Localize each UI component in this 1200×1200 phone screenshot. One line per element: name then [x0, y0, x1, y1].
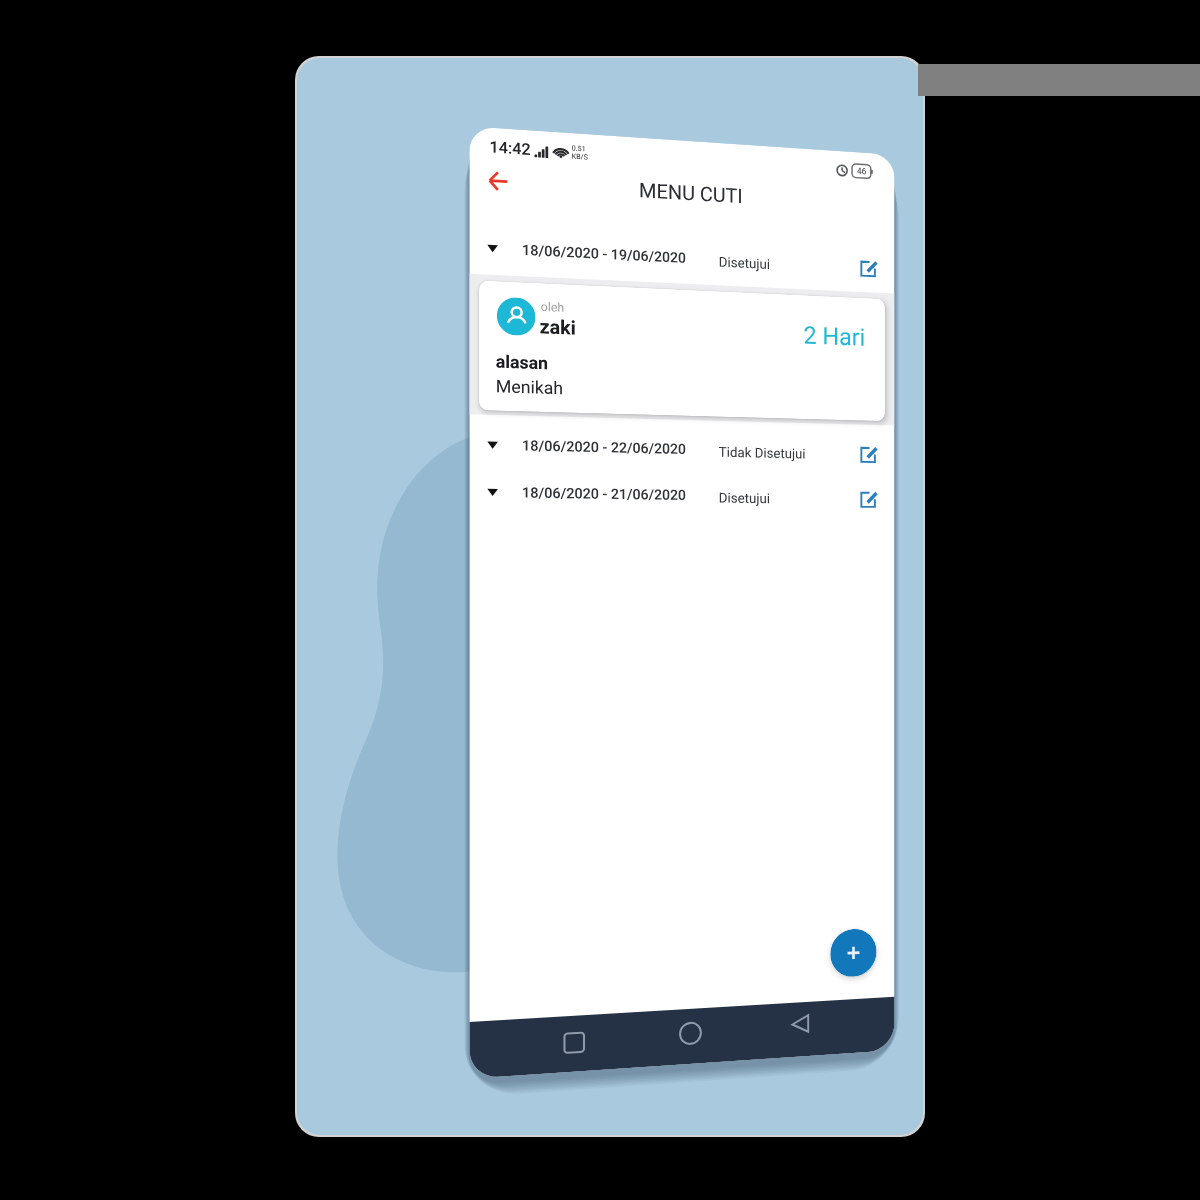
staticText: Disetujui — [719, 489, 770, 506]
button[interactable]: Edit — [857, 443, 879, 467]
button[interactable]: Add — [830, 928, 877, 978]
button[interactable]: 18/06/2020 - 21/06/2020 — [469, 471, 894, 521]
staticText: 2 Hari — [803, 321, 865, 352]
staticText: zaki — [540, 315, 577, 339]
staticText: oleh — [541, 300, 564, 315]
staticText: Disetujui — [719, 253, 770, 272]
button[interactable]: 18/06/2020 - 19/06/2020 — [469, 226, 894, 292]
button[interactable]: Edit — [857, 488, 879, 512]
button[interactable]: oleh — [479, 280, 885, 421]
staticText: KB/S — [572, 152, 588, 162]
button[interactable]: Back — [784, 1006, 817, 1042]
staticText: 18/06/2020 - 22/06/2020 — [522, 437, 686, 457]
staticText: 46 — [857, 166, 867, 177]
button[interactable]: Home — [673, 1015, 707, 1051]
button[interactable]: Edit — [857, 257, 879, 281]
staticText: alasan — [496, 351, 549, 373]
staticText: Tidak Disetujui — [719, 444, 806, 461]
staticText: 18/06/2020 - 21/06/2020 — [522, 484, 686, 503]
button[interactable]: 18/06/2020 - 22/06/2020 — [469, 423, 894, 477]
staticText: 0.51 — [572, 144, 586, 153]
staticText: Menikah — [496, 376, 563, 398]
staticText: 18/06/2020 - 19/06/2020 — [522, 241, 686, 266]
button[interactable]: Recents — [556, 1024, 591, 1061]
staticText: 14:42 — [489, 138, 531, 159]
staticText: MENU CUTI — [639, 178, 743, 207]
button[interactable]: Back — [480, 162, 516, 199]
